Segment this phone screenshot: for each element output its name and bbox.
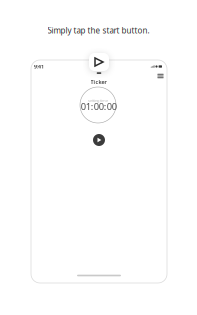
staticText: 9:41 xyxy=(34,63,44,70)
staticText: Ticker xyxy=(90,78,106,86)
staticText: Simply tap the start button. xyxy=(47,25,149,36)
button[interactable]: Menu xyxy=(155,72,165,80)
staticText: 01:00:00 xyxy=(81,100,117,112)
staticText: setting time xyxy=(88,98,108,103)
button[interactable]: Start xyxy=(89,53,109,71)
button[interactable]: Start timer xyxy=(93,134,105,146)
